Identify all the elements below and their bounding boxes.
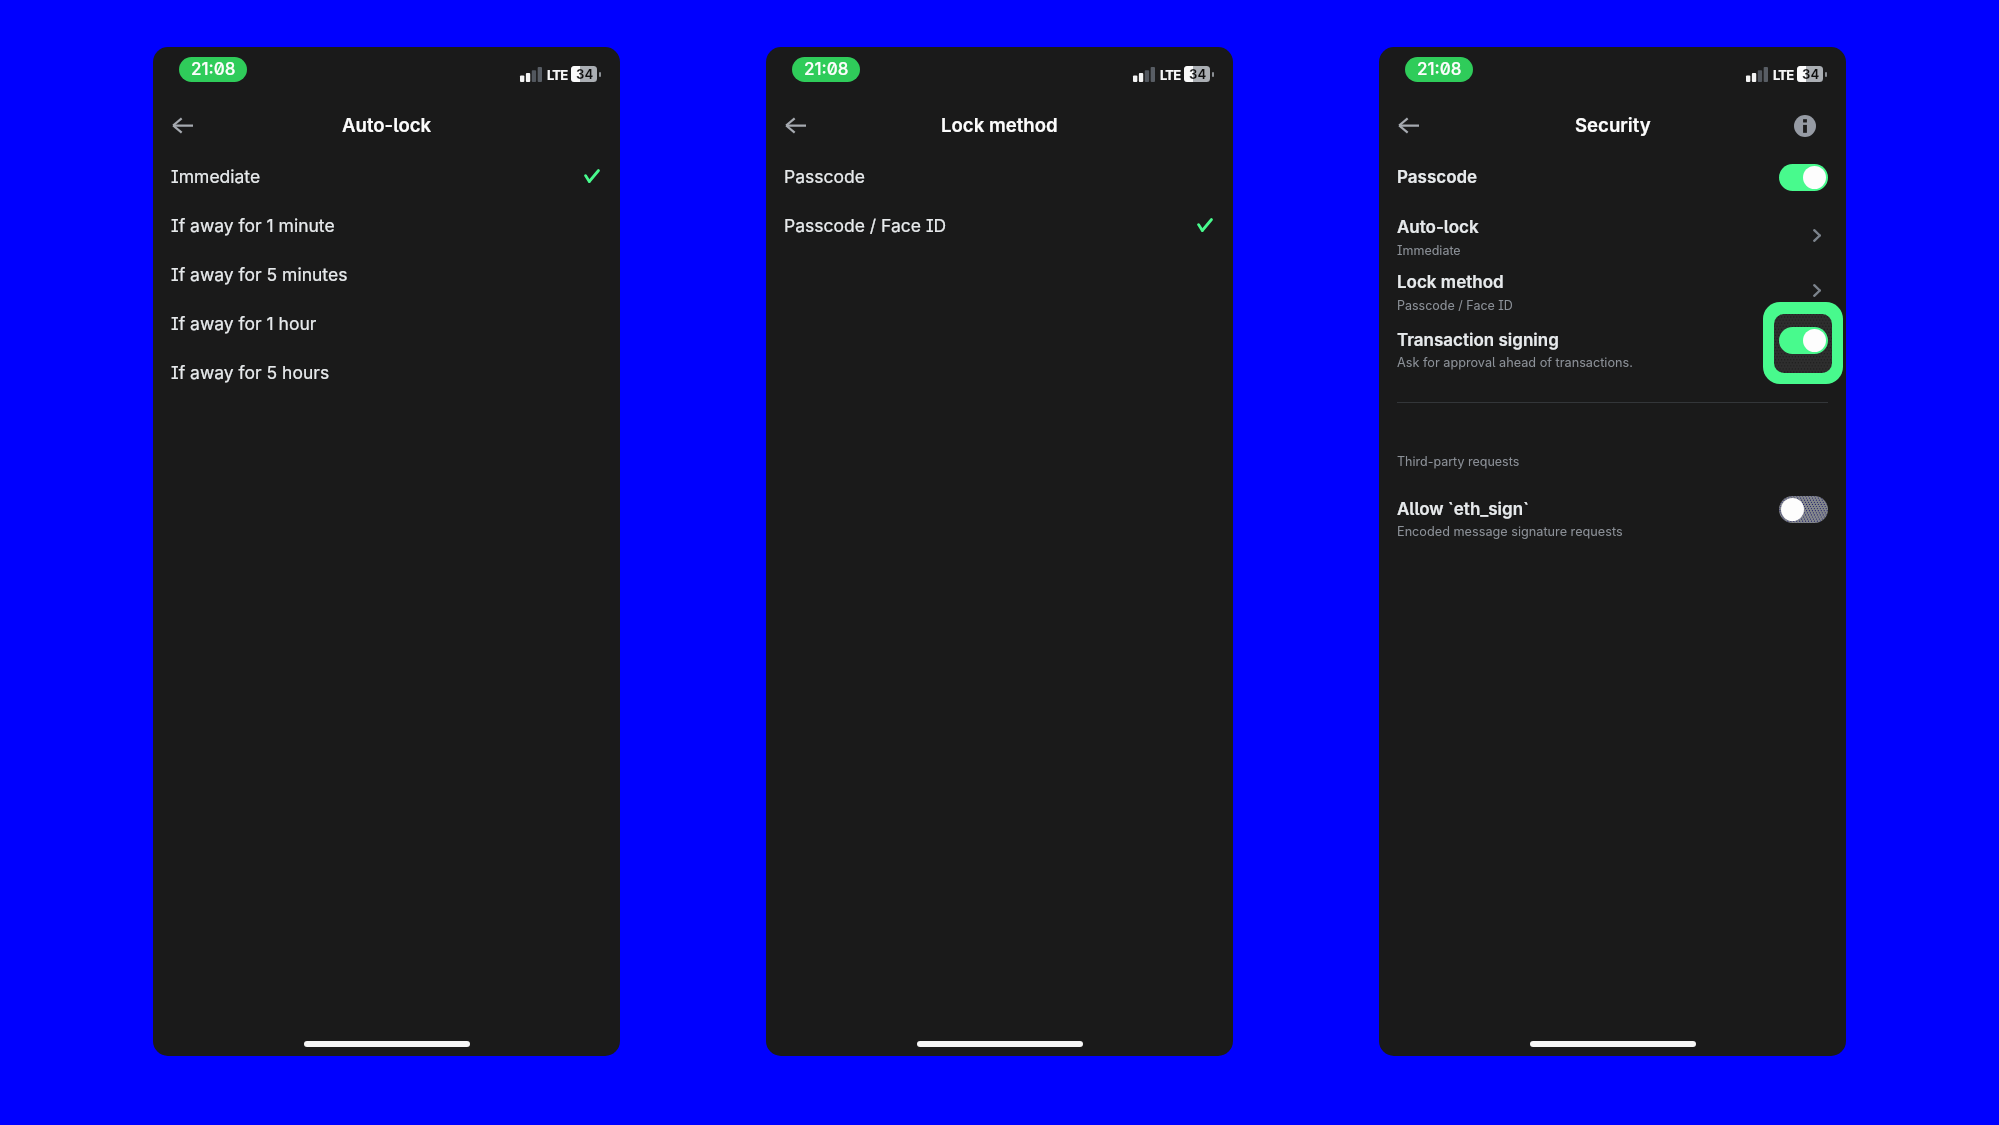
staticText: Passcode [784, 166, 865, 187]
button[interactable]: Back [1386, 104, 1430, 147]
staticText: If away for 1 hour [171, 313, 317, 334]
staticText: Passcode / Face ID [1397, 298, 1513, 313]
staticText: 34 [1802, 66, 1820, 82]
button[interactable]: If away for 5 minutes [153, 259, 620, 289]
staticText: Immediate [171, 166, 261, 187]
button[interactable]: If away for 5 hours [153, 357, 620, 387]
button[interactable]: If away for 1 minute [153, 210, 620, 240]
staticText: If away for 1 minute [171, 215, 335, 236]
button[interactable]: Passcode [766, 161, 1233, 191]
button[interactable]: Auto-lock [1379, 216, 1846, 258]
staticText: Third-party requests [1397, 454, 1520, 469]
staticText: Auto-lock [1397, 217, 1479, 238]
staticText: Lock method [1397, 272, 1504, 293]
staticText: LTE [1160, 67, 1181, 83]
staticText: 34 [576, 66, 594, 82]
button[interactable]: Back [160, 104, 204, 147]
staticText: If away for 5 hours [171, 362, 330, 383]
button[interactable]: Immediate [153, 161, 620, 191]
staticText: Transaction signing [1397, 330, 1559, 351]
staticText: Immediate [1397, 243, 1461, 258]
button[interactable]: Information [1783, 104, 1827, 147]
staticText: LTE [1773, 67, 1794, 83]
button[interactable]: Passcode toggle [1779, 164, 1828, 191]
staticText: Encoded message signature requests [1397, 524, 1623, 539]
staticText: 21:08 [191, 59, 236, 80]
staticText: Ask for approval ahead of transactions. [1397, 355, 1633, 370]
button[interactable]: If away for 1 hour [153, 308, 620, 338]
staticText: LTE [547, 67, 568, 83]
staticText: Security [1575, 114, 1651, 137]
staticText: Lock method [941, 114, 1058, 137]
staticText: Auto-lock [342, 114, 432, 137]
button[interactable]: Transaction signing [1763, 302, 1843, 384]
button[interactable]: Back [773, 104, 817, 147]
button[interactable]: Lock method [1379, 271, 1846, 313]
staticText: Passcode / Face ID [784, 215, 947, 236]
button[interactable]: Transaction signing [1379, 329, 1846, 371]
button[interactable]: Allow `eth_sign` [1379, 498, 1846, 540]
staticText: 21:08 [1417, 59, 1462, 80]
staticText: Passcode [1397, 167, 1478, 188]
staticText: 34 [1189, 66, 1207, 82]
staticText: If away for 5 minutes [171, 264, 348, 285]
staticText: 21:08 [804, 59, 849, 80]
button[interactable]: Passcode / Face ID [766, 210, 1233, 240]
button[interactable]: Allow eth_sign [1779, 496, 1828, 523]
staticText: Allow `eth_sign` [1397, 499, 1530, 520]
button[interactable]: Passcode [1379, 161, 1846, 193]
